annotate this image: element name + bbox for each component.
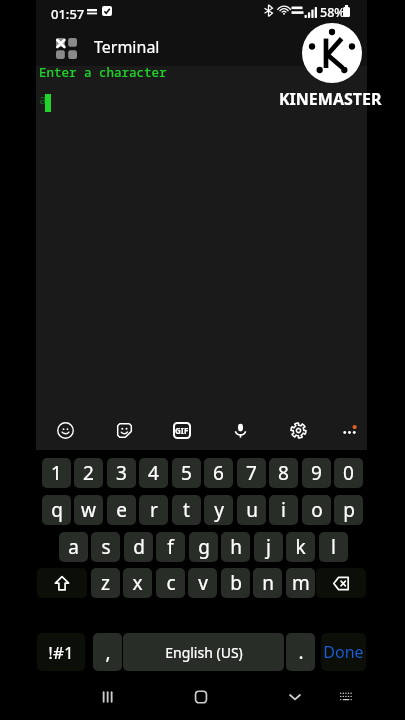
button[interactable]: 5 [172, 458, 201, 488]
button[interactable]: !#1 [37, 633, 85, 671]
staticText: GIF [175, 425, 189, 436]
button[interactable]: Voice input [217, 410, 263, 450]
button[interactable]: r [139, 495, 168, 525]
button[interactable]: j [254, 532, 283, 562]
staticText: k [295, 534, 306, 560]
button[interactable]: l [319, 532, 348, 562]
staticText: p [343, 497, 355, 523]
staticText: w [81, 497, 96, 523]
staticText: q [51, 497, 63, 523]
button[interactable]: b [221, 568, 250, 598]
staticText: . [298, 639, 304, 665]
staticText: a [68, 534, 79, 560]
button[interactable]: 2 [74, 458, 103, 488]
button[interactable]: . [286, 633, 315, 671]
button[interactable]: , [93, 633, 122, 671]
staticText: 9 [311, 460, 322, 486]
button[interactable]: 8 [269, 458, 298, 488]
staticText: 3 [116, 460, 127, 486]
button[interactable]: v [188, 568, 217, 598]
staticText: n [262, 570, 274, 596]
staticText: f [167, 534, 174, 560]
button[interactable]: d [124, 532, 153, 562]
staticText: i [281, 497, 286, 523]
staticText: Enter a character [39, 64, 167, 81]
staticText: h [230, 534, 242, 560]
button[interactable]: f [156, 532, 185, 562]
button[interactable]: u [237, 495, 266, 525]
button[interactable]: m [286, 568, 315, 598]
button[interactable]: g [189, 532, 218, 562]
button[interactable]: Stickers [101, 410, 147, 450]
button[interactable]: o [302, 495, 331, 525]
button[interactable]: h [221, 532, 250, 562]
staticText: u [246, 497, 258, 523]
staticText: s [101, 534, 111, 560]
staticText: 6 [213, 460, 224, 486]
button[interactable]: Back [275, 681, 315, 713]
staticText: l [331, 534, 336, 560]
staticText: 58% [320, 4, 345, 21]
button[interactable]: c [156, 568, 185, 598]
staticText: 01:57 [51, 5, 85, 23]
button[interactable]: More options [326, 410, 372, 450]
button[interactable]: Terminal app icon [56, 38, 77, 58]
staticText: !#1 [48, 641, 74, 664]
button[interactable]: y [204, 495, 233, 525]
button[interactable]: 9 [302, 458, 331, 488]
staticText: d [133, 534, 145, 560]
button[interactable]: English (US) [123, 633, 284, 671]
staticText: x [132, 570, 143, 596]
button[interactable]: a [59, 532, 88, 562]
button[interactable]: Show keyboard [326, 681, 366, 713]
staticText: r [150, 497, 158, 523]
staticText: o [311, 497, 323, 523]
staticText: 4 [148, 460, 159, 486]
staticText: Done [323, 641, 364, 663]
staticText: e [116, 497, 127, 523]
staticText: t [183, 497, 190, 523]
staticText: c [166, 570, 176, 596]
staticText: a [39, 91, 47, 108]
button[interactable]: Backspace [316, 568, 366, 598]
button[interactable]: Done [321, 633, 366, 671]
button[interactable]: 1 [42, 458, 71, 488]
button[interactable]: q [42, 495, 71, 525]
button[interactable]: GIF [159, 410, 205, 450]
button[interactable]: i [269, 495, 298, 525]
button[interactable]: Settings [275, 410, 321, 450]
staticText: j [266, 534, 271, 560]
button[interactable]: s [91, 532, 120, 562]
staticText: 0 [343, 460, 354, 486]
button[interactable]: z [91, 568, 120, 598]
button[interactable]: 4 [139, 458, 168, 488]
staticText: b [230, 570, 242, 596]
button[interactable]: p [334, 495, 363, 525]
button[interactable]: Shift [37, 568, 87, 598]
staticText: 7 [246, 460, 257, 486]
staticText: y [214, 497, 224, 523]
button[interactable]: x [123, 568, 152, 598]
button[interactable]: 6 [204, 458, 233, 488]
button[interactable]: Home [181, 681, 221, 713]
staticText: 5 [181, 460, 192, 486]
button[interactable]: k [286, 532, 315, 562]
button[interactable]: e [107, 495, 136, 525]
staticText: , [105, 639, 111, 665]
staticText: g [198, 534, 210, 560]
staticText: English (US) [165, 643, 243, 662]
button[interactable]: t [172, 495, 201, 525]
staticText: m [292, 570, 310, 596]
button[interactable]: w [74, 495, 103, 525]
staticText: 1 [51, 460, 62, 486]
staticText: z [101, 570, 110, 596]
button[interactable]: 3 [107, 458, 136, 488]
button[interactable]: n [253, 568, 282, 598]
button[interactable]: Emoji [42, 410, 88, 450]
button[interactable]: Recent apps [88, 681, 128, 713]
button[interactable]: 7 [237, 458, 266, 488]
staticText: KINEMASTER [279, 88, 382, 110]
button[interactable]: 0 [334, 458, 363, 488]
staticText: v [198, 570, 208, 596]
staticText: 8 [278, 460, 289, 486]
